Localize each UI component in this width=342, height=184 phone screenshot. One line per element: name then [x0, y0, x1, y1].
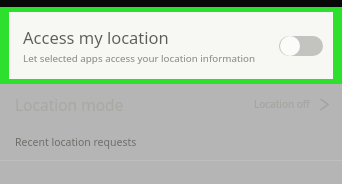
- staticText: Recent location requests: [15, 135, 137, 149]
- button[interactable]: Recent location requests: [0, 124, 342, 160]
- staticText: Location off: [254, 97, 310, 111]
- staticText: Access my location: [23, 26, 169, 48]
- staticText: Let selected apps access your location i…: [23, 52, 255, 65]
- button[interactable]: Access my location toggle, off: [279, 34, 323, 58]
- button[interactable]: Access my location: [9, 12, 333, 79]
- staticText: Location mode: [15, 94, 124, 115]
